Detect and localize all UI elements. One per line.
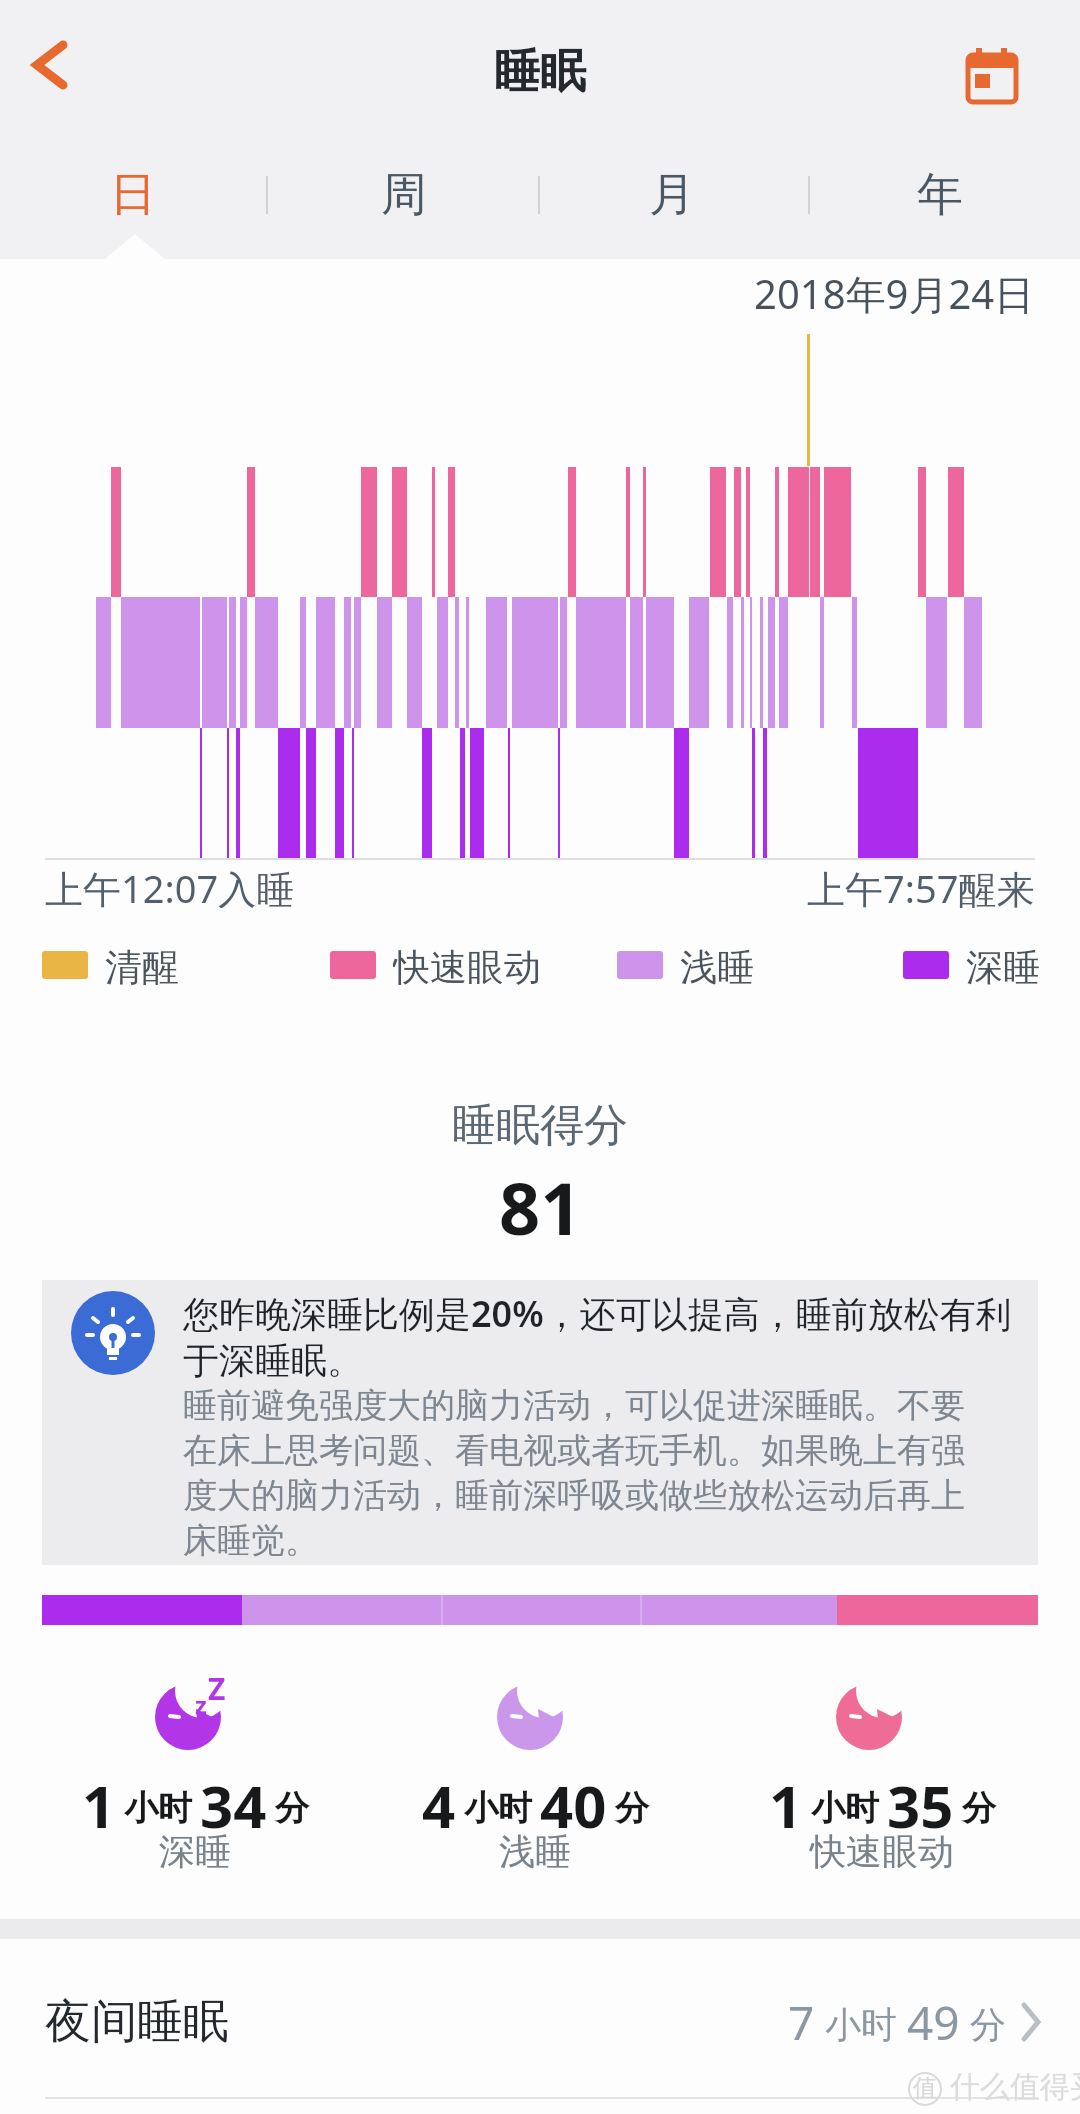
staticText: 您昨晚深睡比例是20%，还可以提高，睡前放松有利 于深睡眠。 xyxy=(183,1289,1012,1383)
staticText: 睡前避免强度大的脑力活动，可以促进深睡眠。不要 在床上思考问题、看电视或者玩手机… xyxy=(183,1384,965,1562)
staticText: 上午12:07入睡 xyxy=(45,862,295,908)
staticText: 小时 xyxy=(124,1787,192,1830)
staticText: 4 xyxy=(422,1766,456,1838)
staticText: 什么值得买 xyxy=(950,2068,1080,2106)
staticText: 清醒 xyxy=(105,944,179,986)
staticText: 值 xyxy=(913,2073,937,2103)
staticText: 分 xyxy=(970,2002,1006,2047)
button[interactable] xyxy=(952,35,1032,115)
staticText: 小时 xyxy=(811,1787,879,1830)
staticText: 分 xyxy=(275,1787,309,1830)
staticText: 分 xyxy=(615,1787,649,1830)
staticText: 2018年9月24日 xyxy=(754,266,1035,314)
staticText: 40 xyxy=(540,1766,607,1838)
staticText: 7 xyxy=(788,1991,815,2054)
staticText: 日 xyxy=(110,166,156,224)
staticText: 35 xyxy=(887,1766,954,1838)
button[interactable] xyxy=(14,30,84,100)
staticText: 睡眠 xyxy=(494,43,586,101)
staticText: 81 xyxy=(499,1158,582,1242)
button[interactable]: 周 xyxy=(344,160,464,230)
staticText: Z xyxy=(208,1668,226,1709)
button[interactable]: 月 xyxy=(612,160,732,230)
staticText: 周 xyxy=(381,166,427,224)
staticText: 34 xyxy=(200,1766,267,1838)
button[interactable]: 夜间睡眠 xyxy=(0,1990,1080,2054)
staticText: 年 xyxy=(917,166,963,224)
staticText: z xyxy=(195,1688,207,1721)
staticText: 小时 xyxy=(464,1787,532,1830)
staticText: 49 xyxy=(907,1991,960,2054)
staticText: 小时 xyxy=(825,2002,897,2047)
staticText: 上午7:57醒来 xyxy=(807,862,1035,908)
staticText: 1 xyxy=(82,1766,116,1838)
staticText: 深睡 xyxy=(159,1829,231,1874)
button[interactable]: 日 xyxy=(73,160,193,230)
staticText: 分 xyxy=(962,1787,996,1830)
staticText: 睡眠得分 xyxy=(452,1098,628,1152)
button[interactable]: 年 xyxy=(880,160,1000,230)
staticText: 快速眼动 xyxy=(810,1829,954,1874)
staticText: 浅睡 xyxy=(499,1829,571,1874)
staticText: 月 xyxy=(649,166,695,224)
staticText: 浅睡 xyxy=(680,944,754,986)
staticText: 深睡 xyxy=(966,944,1040,986)
staticText: 夜间睡眠 xyxy=(45,1993,229,2051)
staticText: 1 xyxy=(769,1766,803,1838)
staticText: 快速眼动 xyxy=(393,944,541,986)
